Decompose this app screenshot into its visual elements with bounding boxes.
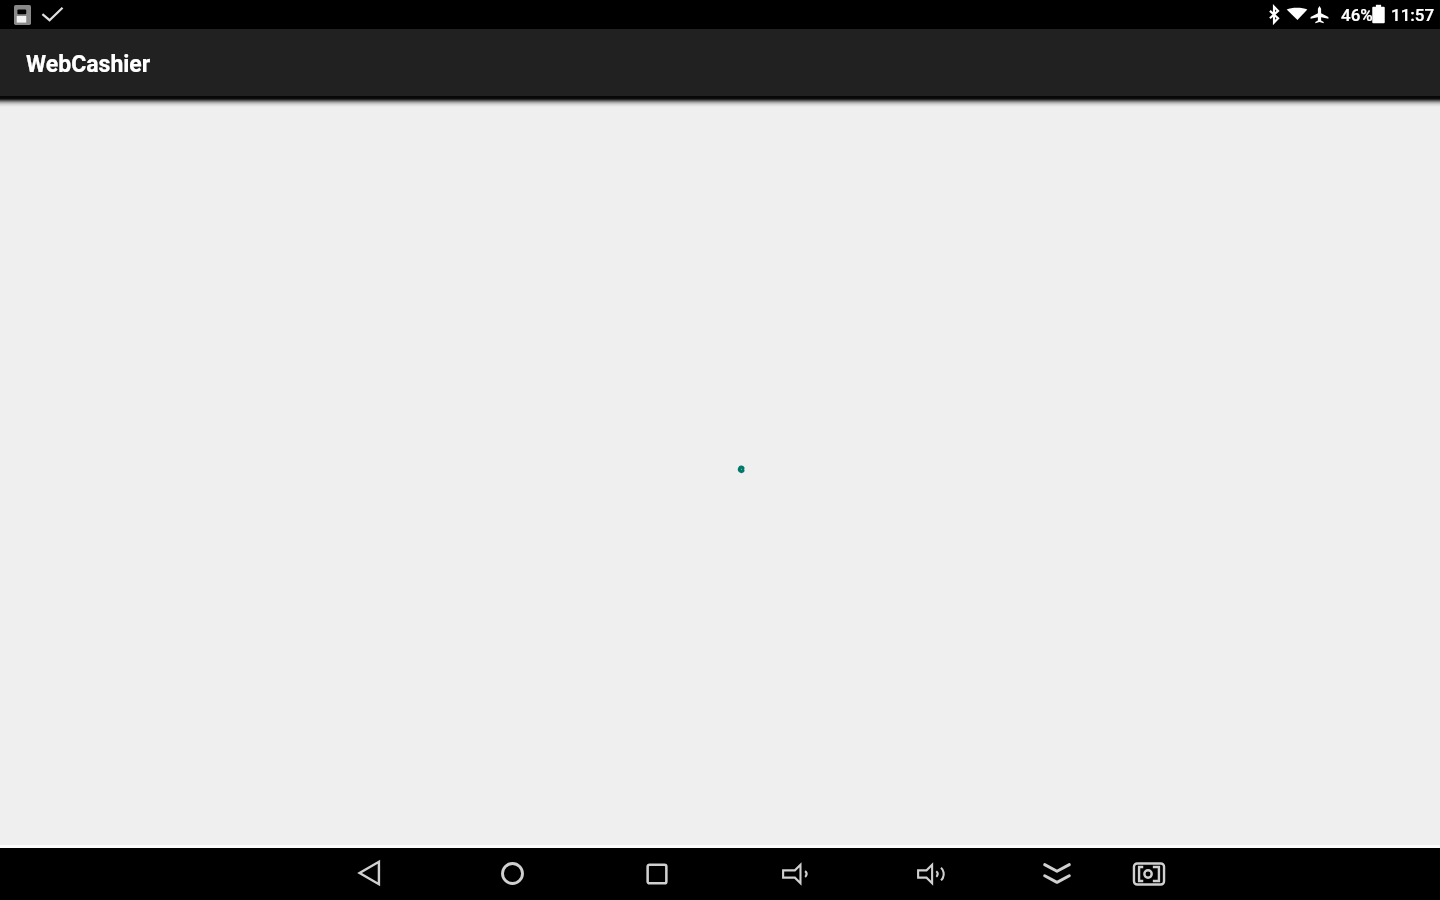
staticText: 46% (1341, 5, 1373, 25)
staticText: WebCashier (26, 51, 151, 78)
button[interactable]: Collapse (1033, 851, 1081, 899)
button[interactable]: Volume down (772, 850, 820, 898)
button[interactable]: Volume up (907, 850, 955, 898)
button[interactable]: Back (345, 849, 393, 897)
button[interactable]: Screenshot (1125, 850, 1173, 898)
button[interactable]: Home (488, 849, 536, 897)
button[interactable]: Recent apps (633, 850, 681, 898)
staticText: 11:57 (1391, 5, 1435, 25)
